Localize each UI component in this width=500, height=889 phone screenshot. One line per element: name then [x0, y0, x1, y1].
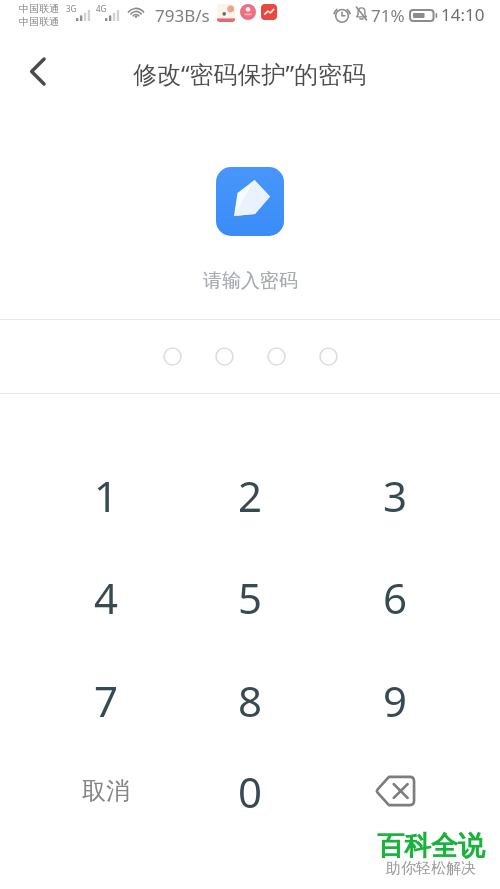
staticText: 14:10: [441, 3, 485, 26]
button[interactable]: Back: [15, 48, 61, 94]
button[interactable]: 7: [34, 649, 178, 751]
button[interactable]: 9: [323, 649, 467, 751]
staticText: 71%: [371, 4, 405, 27]
staticText: 0: [238, 763, 263, 820]
staticText: 793B/s: [155, 4, 210, 27]
staticText: 4: [94, 569, 119, 626]
button[interactable]: 0: [178, 747, 322, 835]
button[interactable]: 6: [323, 546, 467, 648]
staticText: 1: [94, 467, 119, 524]
staticText: 4G: [96, 3, 107, 14]
staticText: 3G: [66, 3, 77, 14]
button[interactable]: 1: [34, 444, 178, 546]
button[interactable]: 5: [178, 546, 322, 648]
staticText: 修改“密码保护”的密码: [133, 57, 367, 90]
staticText: 2: [238, 467, 263, 524]
staticText: 取消: [82, 776, 130, 806]
staticText: 助你轻松解决: [386, 859, 476, 878]
staticText: 请输入密码: [203, 269, 298, 293]
staticText: 3: [383, 467, 408, 524]
staticText: 5: [238, 569, 263, 626]
button[interactable]: 2: [178, 444, 322, 546]
staticText: 6: [383, 569, 408, 626]
button[interactable]: 4: [34, 546, 178, 648]
staticText: 7: [94, 672, 119, 729]
staticText: 中国联通: [19, 2, 59, 15]
staticText: 8: [238, 672, 263, 729]
button[interactable]: 取消: [34, 747, 178, 835]
staticText: 百科全说: [377, 829, 485, 863]
staticText: 9: [383, 672, 408, 729]
button[interactable]: 8: [178, 649, 322, 751]
staticText: 中国联通: [19, 15, 59, 28]
button[interactable]: 3: [323, 444, 467, 546]
button[interactable]: Delete: [323, 747, 467, 835]
